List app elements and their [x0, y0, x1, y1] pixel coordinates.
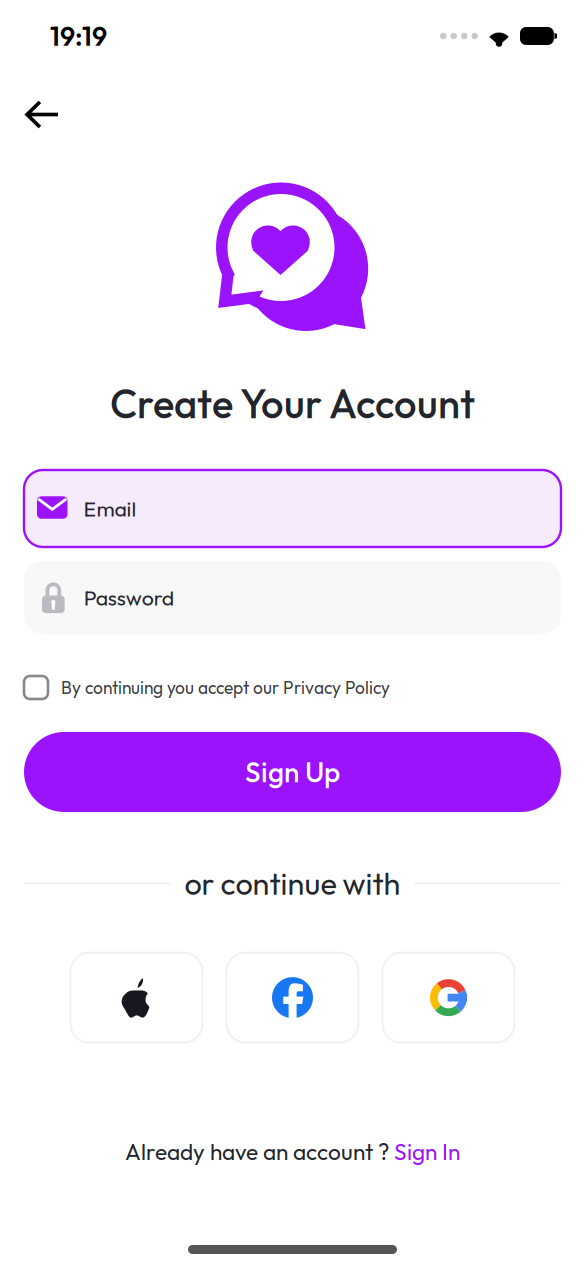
staticText: Create Your Account — [110, 378, 475, 429]
staticText: By continuing you accept our Privacy Pol… — [61, 677, 390, 698]
staticText: or continue with — [184, 864, 400, 903]
button[interactable]: Sign up with Facebook — [226, 953, 358, 1043]
staticText: Sign In — [394, 1137, 460, 1166]
button[interactable]: Password — [0, 561, 585, 634]
staticText: Sign Up — [245, 754, 340, 790]
button[interactable]: Already have an account ? — [117, 1129, 468, 1174]
staticText: Already have an account ? — [125, 1137, 394, 1166]
button[interactable]: Sign up with Google — [382, 953, 514, 1043]
button[interactable]: By continuing you accept our Privacy Pol… — [0, 676, 585, 699]
staticText: Password — [84, 584, 174, 611]
button[interactable]: Back — [13, 90, 71, 139]
button[interactable]: Sign Up — [0, 732, 585, 812]
staticText: Email — [83, 495, 136, 522]
button[interactable]: Sign up with Apple — [70, 953, 202, 1043]
staticText: 19:19 — [50, 19, 107, 53]
button[interactable]: Email — [0, 470, 585, 547]
